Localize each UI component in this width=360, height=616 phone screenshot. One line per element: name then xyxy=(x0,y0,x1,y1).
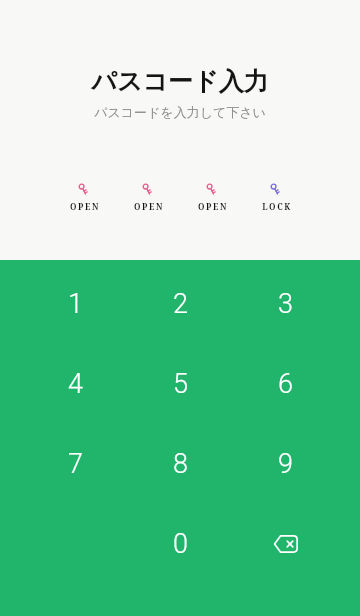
button[interactable]: 1 xyxy=(22,264,128,344)
staticText: OPEN xyxy=(134,201,164,212)
staticText: 8 xyxy=(173,448,188,480)
button[interactable]: OPEN xyxy=(180,179,244,212)
staticText: OPEN xyxy=(198,201,228,212)
button[interactable]: 0 xyxy=(128,504,233,584)
button[interactable]: 3 xyxy=(233,264,338,344)
button[interactable]: Delete xyxy=(233,504,338,584)
staticText: 0 xyxy=(173,528,188,560)
button[interactable]: 6 xyxy=(233,344,338,424)
staticText: 3 xyxy=(278,288,293,320)
staticText: 9 xyxy=(278,448,293,480)
staticText: 6 xyxy=(278,368,293,400)
button[interactable]: 9 xyxy=(233,424,338,504)
button[interactable]: LOCK xyxy=(244,179,308,212)
staticText: OPEN xyxy=(70,201,100,212)
button[interactable]: 5 xyxy=(128,344,233,424)
button[interactable]: 2 xyxy=(128,264,233,344)
staticText: パスコード入力 xyxy=(91,66,269,97)
staticText: 1 xyxy=(68,288,83,320)
button[interactable]: 7 xyxy=(22,424,128,504)
staticText: 2 xyxy=(173,288,188,320)
button[interactable]: OPEN xyxy=(116,179,180,212)
button[interactable]: 4 xyxy=(22,344,128,424)
staticText: 4 xyxy=(68,368,83,400)
button[interactable]: OPEN xyxy=(52,179,116,212)
staticText: 5 xyxy=(173,368,188,400)
staticText: LOCK xyxy=(262,201,292,212)
staticText: パスコードを入力して下さい xyxy=(94,104,266,120)
button[interactable]: 8 xyxy=(128,424,233,504)
staticText: 7 xyxy=(68,448,83,480)
